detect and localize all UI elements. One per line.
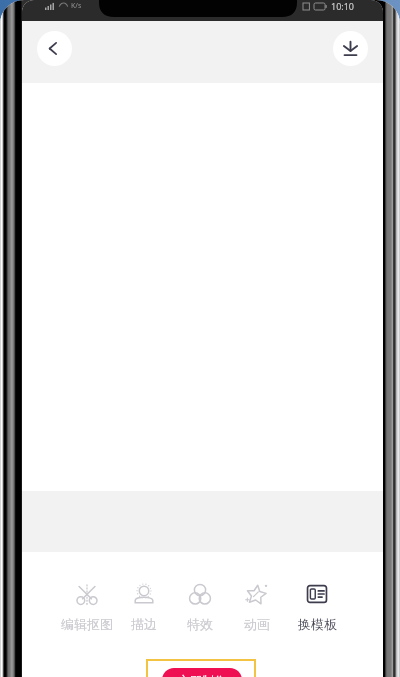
button[interactable]: 换模板 bbox=[288, 583, 346, 632]
staticText: K/s bbox=[71, 1, 82, 11]
staticText: 立即制作 bbox=[178, 673, 226, 677]
staticText: 特效 bbox=[187, 616, 213, 632]
button[interactable]: 动画 bbox=[233, 583, 281, 632]
button[interactable]: 特效 bbox=[176, 583, 224, 632]
button[interactable]: 立即制作 bbox=[162, 668, 242, 677]
staticText: 换模板 bbox=[298, 616, 337, 632]
staticText: 动画 bbox=[244, 616, 270, 632]
button[interactable]: 编辑抠图 bbox=[52, 583, 122, 632]
staticText: 描边 bbox=[131, 616, 157, 632]
staticText: 10:10 bbox=[331, 0, 355, 12]
button[interactable]: Download bbox=[333, 31, 368, 66]
button[interactable]: 描边 bbox=[120, 583, 168, 632]
staticText: 编辑抠图 bbox=[61, 616, 113, 632]
button[interactable]: Back bbox=[37, 31, 72, 66]
